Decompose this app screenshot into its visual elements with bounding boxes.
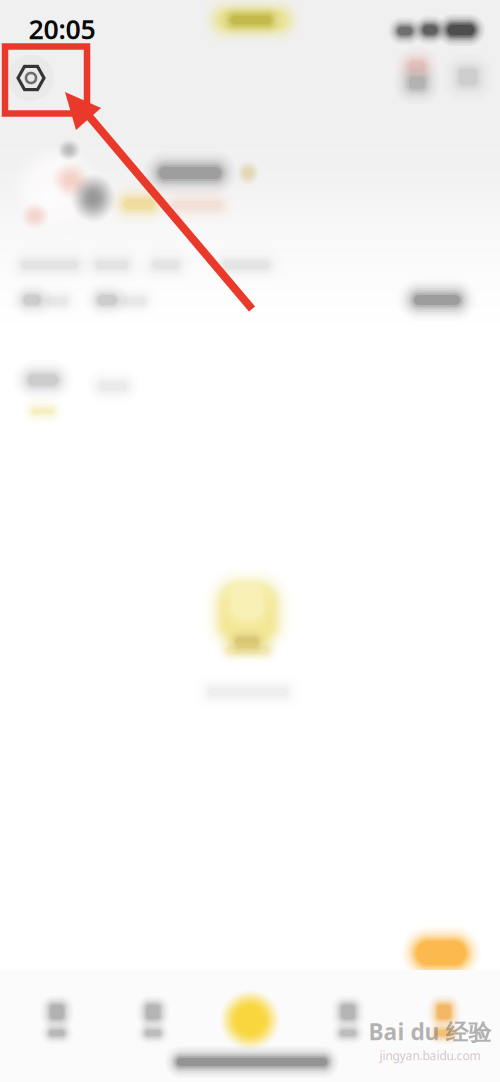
button[interactable]: Profile [398, 983, 490, 1059]
button[interactable]: Messages [302, 983, 394, 1059]
button[interactable]: Home [11, 983, 103, 1059]
button[interactable]: More options [440, 49, 496, 105]
button[interactable]: Works [1, 358, 85, 426]
button[interactable]: Likes [71, 357, 155, 415]
staticText: jingyan.baidu.com [379, 1048, 480, 1063]
button[interactable]: Record video [202, 981, 298, 1059]
button[interactable]: Discover [107, 983, 199, 1059]
staticText: Bai du 经验 [368, 1016, 491, 1047]
button[interactable]: Edit profile [389, 277, 485, 323]
staticText: 20:05 [28, 11, 95, 47]
button[interactable]: Notifications [388, 48, 446, 106]
button[interactable]: Create post [389, 914, 493, 992]
button[interactable]: Settings [2, 49, 60, 107]
